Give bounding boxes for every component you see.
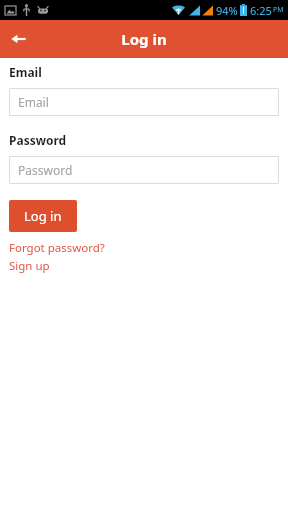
staticText: Log in bbox=[121, 29, 167, 49]
staticText: PM bbox=[273, 5, 284, 15]
staticText: 6:25 bbox=[250, 3, 272, 18]
staticText: 94% bbox=[216, 3, 238, 18]
staticText: Log in bbox=[24, 207, 62, 225]
staticText: Email bbox=[18, 94, 49, 110]
button[interactable]: Email bbox=[9, 88, 279, 116]
staticText: Password bbox=[9, 132, 67, 148]
button[interactable]: Forgot password? bbox=[9, 240, 105, 256]
button[interactable]: Sign up bbox=[9, 258, 50, 274]
staticText: Password bbox=[18, 162, 73, 178]
button[interactable]: Password bbox=[9, 156, 279, 184]
staticText: Sign up bbox=[9, 258, 50, 274]
button[interactable]: Log in bbox=[9, 200, 77, 232]
button[interactable]: Back bbox=[0, 20, 38, 58]
staticText: Forgot password? bbox=[9, 240, 105, 256]
staticText: Email bbox=[9, 64, 42, 80]
